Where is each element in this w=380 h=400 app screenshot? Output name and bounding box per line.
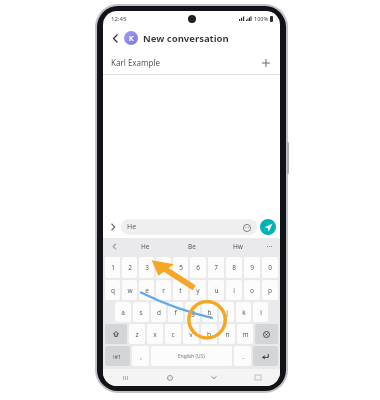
button[interactable]: Previous suggestions	[106, 238, 122, 254]
button[interactable]: Backspace	[255, 324, 278, 344]
button[interactable]: r	[156, 280, 171, 300]
staticText: 0	[268, 263, 272, 272]
button[interactable]: 9	[244, 257, 260, 278]
button[interactable]: w	[122, 280, 137, 300]
button[interactable]: u	[208, 280, 224, 300]
staticText: a	[121, 308, 125, 317]
button[interactable]: Be	[169, 238, 215, 254]
staticText: i	[233, 286, 235, 295]
button[interactable]: c	[165, 324, 181, 344]
staticText: n	[225, 330, 230, 339]
button[interactable]: x	[147, 324, 163, 344]
staticText: 1	[111, 263, 115, 272]
button[interactable]: Hw	[215, 238, 261, 254]
staticText: Hw	[233, 242, 243, 251]
button[interactable]: b	[201, 324, 217, 344]
button[interactable]: More options	[261, 238, 277, 254]
staticText: c	[171, 330, 175, 339]
staticText: r	[162, 286, 165, 295]
button[interactable]: n	[219, 324, 235, 344]
button[interactable]: English (US)	[151, 346, 232, 366]
staticText: .	[242, 352, 244, 361]
button[interactable]: Shift	[105, 324, 127, 344]
button[interactable]: f	[168, 302, 183, 322]
button[interactable]: g	[185, 302, 200, 322]
staticText: x	[153, 330, 157, 339]
button[interactable]: y	[190, 280, 206, 300]
button[interactable]: He	[122, 238, 169, 254]
staticText: 6	[196, 263, 200, 272]
staticText: z	[135, 330, 139, 339]
button[interactable]: s	[133, 302, 149, 322]
staticText: m	[242, 330, 249, 339]
button[interactable]: Back	[108, 31, 123, 46]
staticText: English (US)	[178, 353, 205, 360]
button[interactable]: He	[121, 219, 257, 235]
button[interactable]: o	[244, 280, 260, 300]
button[interactable]: Expand options	[107, 221, 119, 233]
staticText: q	[111, 286, 115, 295]
button[interactable]: 8	[226, 257, 242, 278]
staticText: u	[214, 286, 219, 295]
button[interactable]: z	[129, 324, 145, 344]
staticText: Karl Example	[111, 57, 161, 68]
staticText: 8	[232, 263, 236, 272]
staticText: l	[260, 308, 262, 317]
button[interactable]: Add recipient	[259, 56, 272, 69]
button[interactable]: l	[253, 302, 268, 322]
staticText: v	[189, 330, 193, 339]
button[interactable]: h	[202, 302, 217, 322]
button[interactable]: !#1	[105, 346, 130, 366]
button[interactable]: t	[173, 280, 188, 300]
button[interactable]: .	[234, 346, 251, 366]
staticText: He	[127, 222, 137, 232]
staticText: 5	[179, 263, 183, 272]
button[interactable]: Back	[192, 369, 236, 386]
button[interactable]: Emoji	[242, 223, 251, 232]
button[interactable]: p	[262, 280, 278, 300]
button[interactable]: Karl Example	[103, 50, 280, 74]
button[interactable]: 0	[262, 257, 278, 278]
button[interactable]: Send	[260, 219, 276, 235]
button[interactable]: e	[139, 280, 154, 300]
button[interactable]: Enter	[253, 346, 278, 366]
staticText: w	[127, 286, 133, 295]
button[interactable]: 7	[208, 257, 224, 278]
button[interactable]: m	[237, 324, 253, 344]
staticText: t	[179, 286, 182, 295]
button[interactable]: d	[151, 302, 166, 322]
button[interactable]: 1	[105, 257, 120, 278]
button[interactable]: 4	[156, 257, 171, 278]
staticText: 3	[145, 263, 149, 272]
staticText: e	[145, 286, 149, 295]
button[interactable]: q	[105, 280, 120, 300]
staticText: 9	[250, 263, 254, 272]
staticText: !#1	[113, 353, 122, 360]
staticText: s	[139, 308, 143, 317]
button[interactable]: 6	[190, 257, 206, 278]
button[interactable]: 5	[173, 257, 188, 278]
staticText: 7	[214, 263, 218, 272]
button[interactable]: Home	[148, 369, 192, 386]
button[interactable]: ,	[132, 346, 149, 366]
staticText: 12:45	[111, 15, 127, 23]
staticText: o	[250, 286, 254, 295]
button[interactable]: K	[124, 31, 138, 45]
staticText: k	[242, 308, 246, 317]
button[interactable]: a	[115, 302, 131, 322]
staticText: Be	[188, 242, 196, 251]
staticText: f	[174, 308, 177, 317]
button[interactable]: v	[183, 324, 199, 344]
button[interactable]: k	[236, 302, 251, 322]
button[interactable]: 2	[122, 257, 137, 278]
button[interactable]: i	[226, 280, 242, 300]
staticText: ,	[140, 352, 142, 361]
staticText: p	[268, 286, 272, 295]
button[interactable]: Hide keyboard	[236, 369, 280, 386]
button[interactable]: 3	[139, 257, 154, 278]
staticText: He	[141, 242, 150, 251]
staticText: 2	[128, 263, 132, 272]
button[interactable]: Recent apps	[103, 369, 148, 386]
button[interactable]: j	[219, 302, 234, 322]
